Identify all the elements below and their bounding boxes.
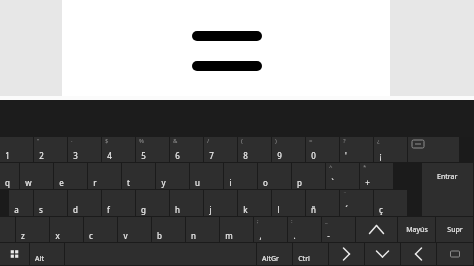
staticText: ^ (329, 163, 333, 171)
button[interactable]: Windows (0, 243, 29, 265)
staticText: . (293, 230, 296, 241)
button[interactable]: ^ (326, 163, 359, 189)
staticText: y (161, 177, 166, 188)
button[interactable]: j (204, 190, 237, 216)
staticText: k (243, 204, 248, 215)
button[interactable]: d (68, 190, 101, 216)
staticText: ` (331, 177, 334, 188)
staticText: $ (105, 137, 109, 145)
staticText: 7 (209, 150, 214, 161)
button[interactable]: _ (322, 217, 355, 242)
button[interactable]: 1 (0, 137, 33, 162)
staticText: ¿ (377, 137, 380, 145)
button[interactable]: ; (254, 217, 287, 242)
staticText: Mayús (406, 225, 428, 235)
button[interactable]: w (20, 163, 53, 189)
button[interactable]: ¿ (374, 137, 407, 162)
staticText: ¨ (343, 190, 347, 198)
button[interactable]: i (224, 163, 257, 189)
button[interactable]: t (122, 163, 155, 189)
button[interactable]: Mayús (398, 217, 435, 242)
staticText: v (123, 230, 128, 241)
staticText: 1 (5, 150, 10, 161)
staticText: = (309, 137, 313, 145)
staticText: t (127, 177, 130, 188)
staticText: p (297, 177, 302, 188)
button[interactable]: c (84, 217, 117, 242)
staticText: q (5, 177, 10, 188)
button[interactable]: Right (401, 243, 436, 265)
button[interactable]: Supr (436, 217, 473, 242)
button[interactable]: q (0, 163, 19, 189)
staticText: 6 (175, 150, 180, 161)
button[interactable]: n (186, 217, 219, 242)
button[interactable]: * (360, 163, 393, 189)
button[interactable]: : (288, 217, 321, 242)
button[interactable]: o (258, 163, 291, 189)
button[interactable]: / (204, 137, 237, 162)
button[interactable]: % (136, 137, 169, 162)
button[interactable]: Alt (30, 243, 64, 265)
button[interactable]: y (156, 163, 189, 189)
button[interactable]: r (88, 163, 121, 189)
button[interactable]: ç (374, 190, 407, 216)
button[interactable]: e (54, 163, 87, 189)
staticText: c (89, 230, 93, 241)
staticText: o (263, 177, 268, 188)
staticText: 4 (107, 150, 112, 161)
staticText: ´ (345, 204, 348, 215)
button[interactable]: b (152, 217, 185, 242)
button[interactable]: f (102, 190, 135, 216)
staticText: & (173, 137, 178, 145)
button[interactable]: g (136, 190, 169, 216)
staticText: m (225, 230, 233, 241)
staticText: Supr (447, 225, 463, 235)
staticText: 5 (141, 150, 146, 161)
button[interactable]: Shift (356, 217, 397, 242)
button[interactable]: k (238, 190, 271, 216)
button[interactable]: Down (365, 243, 400, 265)
staticText: u (195, 177, 200, 188)
staticText: 9 (277, 150, 282, 161)
button[interactable]: Backspace (408, 137, 459, 162)
button[interactable]: & (170, 137, 203, 162)
button[interactable]: $ (102, 137, 135, 162)
button[interactable]: Hide keyboard (437, 243, 473, 265)
button[interactable]: " (34, 137, 67, 162)
staticText: n (191, 230, 196, 241)
button[interactable]: v (118, 217, 151, 242)
staticText: d (73, 204, 78, 215)
button[interactable]: h (170, 190, 203, 216)
button[interactable]: Left (329, 243, 364, 265)
button[interactable]: Entrar (422, 163, 473, 216)
button[interactable]: AltGr (257, 243, 292, 265)
staticText: x (55, 230, 60, 241)
button[interactable]: s (34, 190, 67, 216)
button[interactable]: ) (272, 137, 305, 162)
staticText: l (277, 204, 280, 215)
button[interactable]: m (220, 217, 253, 242)
button[interactable]: a (9, 190, 33, 216)
button[interactable]: p (292, 163, 325, 189)
button[interactable]: · (68, 137, 101, 162)
button[interactable]: x (50, 217, 83, 242)
button[interactable]: = (306, 137, 339, 162)
staticText: Entrar (437, 172, 458, 182)
button[interactable]: Ctrl (293, 243, 328, 265)
button[interactable]: z (16, 217, 49, 242)
button[interactable]: u (190, 163, 223, 189)
button[interactable]: ñ (306, 190, 339, 216)
staticText: AltGr (262, 254, 279, 264)
staticText: h (175, 204, 180, 215)
staticText: " (37, 137, 40, 145)
button[interactable]: l (272, 190, 305, 216)
button[interactable]: ¨ (340, 190, 373, 216)
staticText: 0 (311, 150, 316, 161)
staticText: · (71, 137, 73, 145)
staticText: Ctrl (298, 254, 310, 264)
staticText: a (14, 204, 19, 215)
button[interactable]: ? (340, 137, 373, 162)
button[interactable]: ( (238, 137, 271, 162)
